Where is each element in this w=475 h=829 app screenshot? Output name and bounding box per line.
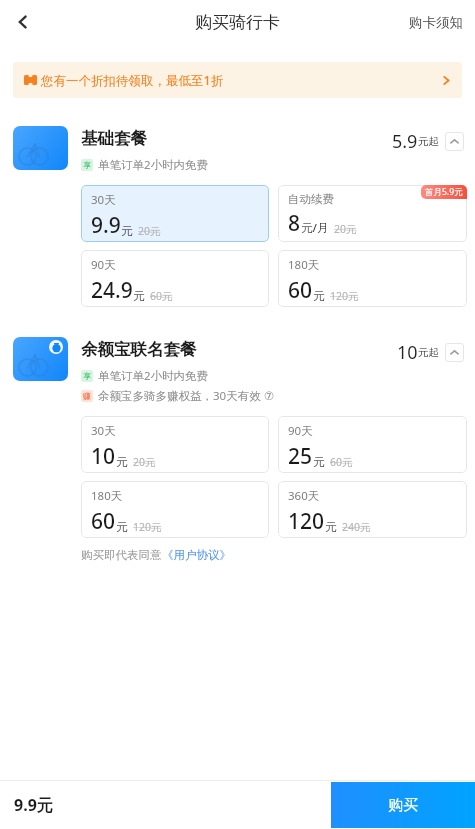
staticText: 360天	[288, 488, 320, 504]
staticText: 30天	[91, 192, 116, 208]
staticText: 《用户协议》	[162, 548, 231, 562]
staticText: 60元	[150, 289, 173, 303]
button[interactable]: 30天	[81, 185, 269, 242]
button[interactable]: Back	[0, 0, 46, 44]
button[interactable]: 360天	[278, 481, 467, 538]
staticText: 8	[288, 209, 301, 238]
staticText: 余额宝多骑多赚权益，30天有效 ⑦	[98, 388, 274, 404]
staticText: 享	[83, 160, 91, 170]
staticText: 60	[91, 507, 116, 536]
staticText: 元/月	[301, 220, 329, 236]
staticText: 元	[325, 520, 337, 534]
staticText: 120	[288, 507, 325, 536]
staticText: 单笔订单2小时内免费	[98, 157, 209, 173]
staticText: 60	[288, 276, 313, 305]
button[interactable]: 90天	[278, 416, 467, 473]
button[interactable]: Collapse	[445, 343, 464, 362]
staticText: 240元	[342, 520, 371, 534]
staticText: 9.9	[91, 211, 121, 240]
staticText: 购买即代表同意	[81, 548, 162, 562]
staticText: 90天	[91, 257, 116, 273]
staticText: 元起	[418, 135, 439, 148]
button[interactable]: 自动续费	[278, 185, 467, 242]
staticText: 30天	[91, 423, 116, 439]
staticText: 余额宝联名套餐	[81, 339, 197, 360]
staticText: 购卡须知	[409, 14, 463, 31]
button[interactable]: 购买	[331, 782, 475, 828]
staticText: 90天	[288, 423, 313, 439]
button[interactable]: 购买即代表同意	[81, 548, 231, 562]
staticText: 元	[121, 224, 133, 238]
staticText: 180天	[91, 488, 123, 504]
staticText: 元起	[418, 346, 439, 359]
button[interactable]: 购卡须知	[409, 14, 463, 31]
staticText: 元	[313, 289, 325, 303]
staticText: 享	[83, 371, 91, 381]
staticText: 120元	[330, 289, 359, 303]
staticText: 60元	[330, 455, 353, 469]
staticText: 元	[116, 520, 128, 534]
staticText: 120元	[133, 520, 162, 534]
staticText: 20元	[334, 222, 357, 236]
staticText: 首月5.9元	[425, 186, 463, 198]
staticText: 元	[313, 455, 325, 469]
staticText: 9.9元	[14, 794, 53, 816]
staticText: 元	[133, 289, 145, 303]
staticText: 购买骑行卡	[195, 12, 280, 33]
button[interactable]: 90天	[81, 250, 269, 307]
button[interactable]: 您有一个折扣待领取，最低至1折	[13, 62, 462, 98]
staticText: 5.9	[392, 129, 418, 154]
staticText: 赚	[83, 391, 91, 401]
staticText: 购买	[388, 796, 418, 815]
staticText: 10	[91, 442, 116, 471]
staticText: 元	[116, 455, 128, 469]
button[interactable]: 180天	[278, 250, 467, 307]
staticText: 20元	[133, 455, 156, 469]
staticText: 单笔订单2小时内免费	[98, 368, 209, 384]
staticText: 10	[397, 340, 418, 365]
button[interactable]: Collapse	[445, 132, 464, 151]
staticText: 自动续费	[288, 192, 334, 206]
staticText: 基础套餐	[81, 128, 147, 149]
staticText: 25	[288, 442, 313, 471]
button[interactable]: 30天	[81, 416, 269, 473]
staticText: 20元	[138, 224, 161, 238]
button[interactable]: 180天	[81, 481, 269, 538]
staticText: 您有一个折扣待领取，最低至1折	[41, 72, 224, 89]
staticText: 24.9	[91, 276, 133, 305]
staticText: 180天	[288, 257, 320, 273]
